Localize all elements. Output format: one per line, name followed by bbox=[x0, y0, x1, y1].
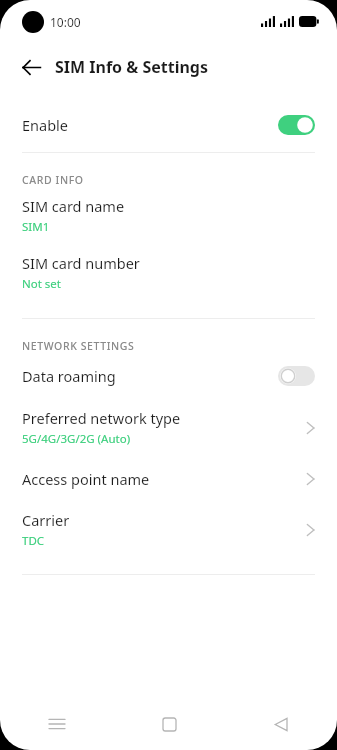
staticText: SIM1 bbox=[22, 219, 50, 235]
button[interactable]: SIM card number bbox=[0, 244, 337, 301]
staticText: Access point name bbox=[22, 469, 306, 489]
button[interactable]: Carrier bbox=[0, 501, 337, 558]
button[interactable]: Enable bbox=[0, 97, 337, 152]
staticText: Preferred network type bbox=[22, 408, 181, 428]
staticText: SIM card number bbox=[22, 253, 140, 273]
staticText: SIM card name bbox=[22, 196, 125, 216]
button[interactable]: Back bbox=[14, 50, 48, 84]
staticText: 10:00 bbox=[50, 14, 81, 30]
staticText: Enable bbox=[22, 115, 278, 135]
button[interactable]: Preferred network type bbox=[0, 399, 337, 456]
staticText: NETWORK SETTINGS bbox=[22, 339, 135, 353]
staticText: Carrier bbox=[22, 510, 70, 530]
staticText: 5G/4G/3G/2G (Auto) bbox=[22, 431, 131, 447]
button[interactable]: Home bbox=[113, 698, 225, 750]
staticText: Data roaming bbox=[22, 366, 278, 386]
staticText: Not set bbox=[22, 276, 61, 292]
button[interactable]: Back bbox=[225, 698, 337, 750]
button[interactable]: SIM card name bbox=[0, 187, 337, 244]
button[interactable]: Data roaming bbox=[0, 353, 337, 399]
staticText: SIM Info & Settings bbox=[55, 56, 209, 78]
staticText: TDC bbox=[22, 533, 45, 549]
button[interactable]: Recent apps bbox=[0, 698, 113, 750]
staticText: CARD INFO bbox=[22, 173, 84, 187]
button[interactable]: Access point name bbox=[0, 456, 337, 501]
